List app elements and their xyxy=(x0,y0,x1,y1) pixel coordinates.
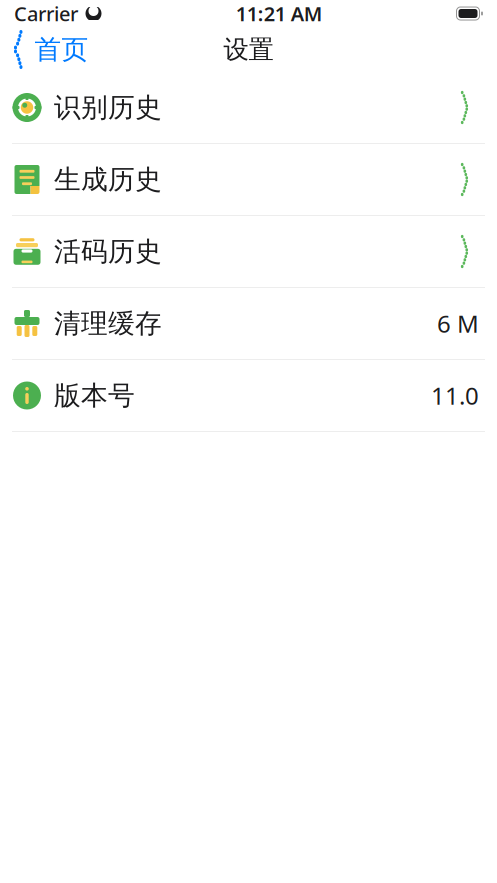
staticText: Carrier xyxy=(14,0,78,27)
staticText: 生成历史 xyxy=(54,163,162,196)
staticText: 6 M xyxy=(437,308,479,339)
button[interactable]: 首页 xyxy=(0,24,98,75)
staticText: 识别历史 xyxy=(54,91,162,124)
staticText: 活码历史 xyxy=(54,235,162,268)
staticText: 设置 xyxy=(223,34,273,65)
button[interactable]: 活码历史 xyxy=(0,216,497,288)
staticText: 11:21 AM xyxy=(236,0,323,27)
staticText: 首页 xyxy=(34,33,88,66)
button[interactable]: 识别历史 xyxy=(0,72,497,144)
button[interactable]: 版本号 xyxy=(0,360,497,432)
button[interactable]: 清理缓存 xyxy=(0,288,497,360)
staticText: 11.0 xyxy=(431,380,479,411)
button[interactable]: 生成历史 xyxy=(0,144,497,216)
staticText: 版本号 xyxy=(54,379,135,412)
staticText: 清理缓存 xyxy=(54,307,162,340)
